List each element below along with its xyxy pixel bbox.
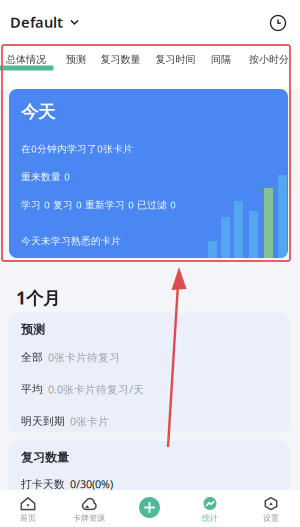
button[interactable]: 卡牌资源 (63, 495, 115, 525)
staticText: 设置 (263, 513, 279, 523)
staticText: Default (10, 12, 63, 32)
staticText: 明天到期 (21, 414, 65, 428)
button[interactable]: 按小时分 (239, 45, 299, 74)
button[interactable]: Add (139, 497, 160, 518)
staticText: 统计 (202, 513, 218, 523)
button[interactable]: 复习数量 (93, 45, 148, 74)
staticText: 1个月 (16, 286, 60, 310)
staticText: 预测 (21, 322, 45, 337)
staticText: 0.0张卡片待复习/天 (48, 382, 144, 396)
staticText: 复习数量 (21, 450, 69, 465)
button[interactable]: 统计 (184, 495, 236, 525)
staticText: 间隔 (211, 53, 231, 66)
staticText: 学习 0 复习 0 重新学习 0 已过滤 0 (21, 198, 176, 211)
staticText: 复习时间 (155, 53, 195, 66)
staticText: 今天未学习熟悉的卡片 (21, 235, 121, 247)
button[interactable]: 复习时间 (148, 45, 203, 74)
staticText: 总体情况 (6, 53, 46, 66)
staticText: 0张卡片 (70, 414, 109, 428)
staticText: 预测 (66, 53, 86, 66)
staticText: 按小时分 (249, 53, 289, 66)
staticText: 平均 (21, 382, 43, 396)
staticText: 0/30(0%) (70, 477, 113, 491)
staticText: 0张卡片待复习 (48, 350, 120, 364)
staticText: 首页 (20, 513, 36, 523)
button[interactable]: Default (4, 6, 84, 38)
button[interactable]: 设置 (245, 495, 297, 525)
button[interactable]: 总体情况 (0, 45, 53, 74)
button[interactable]: 预测 (59, 45, 93, 74)
staticText: 打卡天数 (21, 477, 65, 491)
staticText: 卡牌资源 (73, 513, 105, 523)
staticText: 复习数量 (100, 53, 140, 66)
staticText: 全部 (21, 350, 43, 364)
button[interactable]: 首页 (2, 495, 54, 525)
button[interactable]: History (262, 8, 294, 38)
button[interactable]: 间隔 (204, 45, 238, 74)
staticText: 重来数量 0 (21, 170, 70, 183)
staticText: 在0分钟内学习了0张卡片 (21, 142, 133, 155)
staticText: 今天 (21, 101, 55, 123)
